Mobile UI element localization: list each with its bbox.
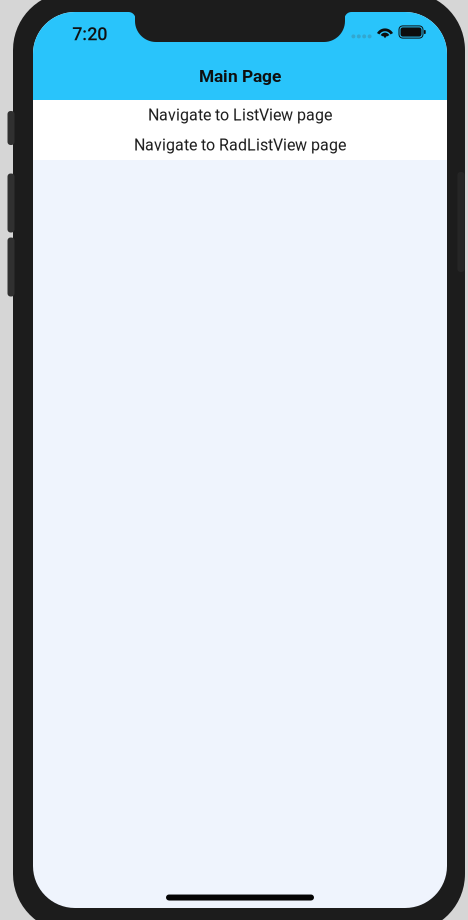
staticText: Navigate to RadListView page bbox=[134, 136, 346, 154]
button[interactable]: Navigate to ListView page bbox=[33, 100, 447, 130]
staticText: Navigate to ListView page bbox=[148, 106, 332, 124]
staticText: Main Page bbox=[199, 66, 281, 86]
button[interactable]: Navigate to RadListView page bbox=[33, 130, 447, 160]
staticText: 7:20 bbox=[72, 24, 107, 45]
